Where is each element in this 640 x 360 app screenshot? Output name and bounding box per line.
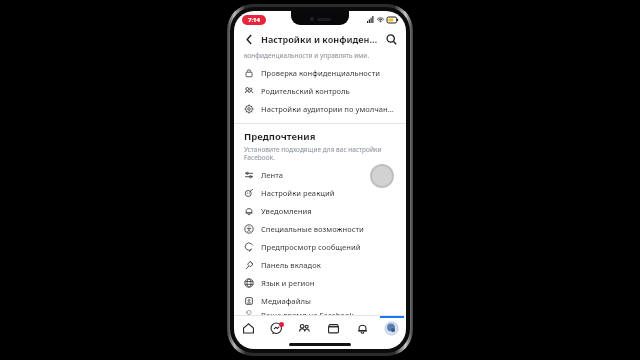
staticText: Ваше время на Facebook [261,310,354,315]
button[interactable]: Друзья [290,316,319,340]
staticText: Установите подходящие для вас настройки … [244,145,382,162]
button[interactable]: Поиск [383,31,399,47]
button[interactable]: Проверка конфиденциальности [234,64,406,82]
button[interactable]: Маркетплейс [319,316,348,340]
button[interactable]: Ваше время на Facebook [234,310,406,315]
button[interactable]: Панель вкладок [234,256,406,274]
button[interactable]: Главная [234,316,262,340]
button[interactable]: Мессенджер [262,316,290,340]
button[interactable]: Настройки реакций [234,184,406,202]
button[interactable]: Предпросмотр сообщений [234,238,406,256]
staticText: Настройки и конфиденциально… [261,33,379,45]
button[interactable]: Медиафайлы [234,292,406,310]
staticText: Язык и регион [261,278,315,288]
button[interactable]: Уведомления [234,202,406,220]
staticText: 7:14 [248,16,260,24]
button[interactable]: Профиль [377,316,406,340]
button[interactable]: Родительский контроль [234,82,406,100]
staticText: Уведомления [261,206,312,216]
button[interactable]: Лента [234,166,406,184]
button[interactable]: Специальные возможности [234,220,406,238]
button[interactable]: Язык и регион [234,274,406,292]
staticText: Предпросмотр сообщений [261,242,361,252]
button[interactable]: Назад [241,31,257,47]
staticText: конфиденциальности и управлять ими. [244,51,370,60]
button[interactable]: Настройки аудитории по умолчанию [234,100,406,118]
staticText: Настройки реакций [261,188,335,198]
staticText: Специальные возможности [261,224,364,234]
staticText: Медиафайлы [261,296,311,306]
staticText: Родительский контроль [261,86,350,96]
button[interactable]: Уведомления [348,316,377,340]
staticText: Предпочтения [244,130,316,143]
staticText: Лента [261,170,284,180]
staticText: Проверка конфиденциальности [261,68,380,78]
staticText: Панель вкладок [261,260,321,270]
staticText: Настройки аудитории по умолчанию [261,104,398,114]
